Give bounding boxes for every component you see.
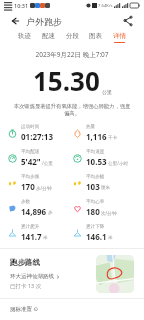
staticText: 平均速度 [86,149,105,155]
button[interactable]: 轨迹 [16,31,33,44]
button[interactable]: 平均步频 [7,174,72,192]
button[interactable]: 详情 [111,31,128,44]
staticText: 测标准置 ⊙ [10,305,39,313]
staticText: 10.53 [86,156,107,167]
button[interactable]: 平均速度 [72,149,137,167]
staticText: 180 [86,206,100,217]
staticText: 累计爬升 [21,224,40,230]
staticText: 跑步路线 [10,258,40,267]
staticText: 已打卡 13 次 [10,282,42,290]
staticText: 平均配速 [21,149,40,155]
staticText: 146.1 [86,231,107,242]
staticText: 米 [43,235,48,241]
staticText: 运动时间 [21,124,40,130]
staticText: 分段 [66,32,79,40]
button[interactable]: 图表 [87,31,104,44]
staticText: 热量 [86,124,96,130]
staticText: 次/分钟 [101,210,117,216]
staticText: 公里 [102,89,112,95]
button[interactable]: 平均配速 [7,149,72,167]
staticText: 配速 [42,32,55,40]
button[interactable]: 平均步幅 [72,174,137,192]
staticText: 详情 [113,32,126,40]
button[interactable]: 配速 [40,31,57,44]
staticText: 170 [21,181,35,192]
button[interactable]: 累计爬升 [7,224,72,242]
staticText: 15.30 [33,63,100,98]
staticText: 14,896 [21,206,47,217]
staticText: 米 [108,235,113,241]
staticText: 本次锻炼显著提升有氧体能，增强心肺能力，强度 偏高。 [12,103,132,117]
button[interactable]: 步数 [7,199,72,217]
staticText: 平均心率 [86,199,105,205]
button[interactable]: 分段 [64,31,81,44]
staticText: 步 [48,210,53,216]
staticText: 平均步幅 [86,174,105,180]
staticText: 1,116 [86,131,107,142]
staticText: 厘米 [101,185,111,191]
button[interactable]: Share [120,13,136,29]
staticText: 2023年9月22日 晚上7:07 [0,50,144,59]
staticText: 10:31 [14,2,29,9]
staticText: 01:27:13 [21,131,53,142]
staticText: 5'42" [21,156,41,167]
staticText: 103 [86,181,100,192]
button[interactable]: 跑步路线 [0,255,144,293]
staticText: 141.7 [21,231,42,242]
staticText: 累计下降 [86,224,105,230]
button[interactable]: 累计下降 [72,224,137,242]
staticText: 步数 [21,199,31,205]
staticText: 千卡 [108,135,118,141]
button[interactable]: 平均心率 [72,199,137,217]
staticText: 7.64K/s [98,3,113,9]
button[interactable]: 运动时间 [7,124,72,142]
staticText: 图表 [89,32,102,40]
button[interactable]: 热量 [72,124,137,142]
staticText: /公里 [42,160,53,166]
staticText: 公里/小时 [108,160,129,166]
staticText: 平均步频 [21,174,40,180]
staticText: 环大运神仙湖路线 [10,273,54,280]
staticText: 户外跑步 [26,16,62,27]
button[interactable]: Back [8,14,22,28]
staticText: 轨迹 [18,32,31,40]
staticText: 步/分钟 [36,185,52,191]
